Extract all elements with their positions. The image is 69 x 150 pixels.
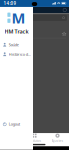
button[interactable]: Produtos	[23, 133, 46, 143]
staticText: Histórico de Produtos	[9, 52, 30, 57]
button[interactable]: Ajustes	[46, 133, 69, 143]
staticText: Ajustes	[51, 138, 63, 143]
staticText: Saúde	[9, 42, 19, 47]
staticText: Produtos	[27, 138, 41, 143]
button[interactable]: Histórico de Produtos	[0, 49, 33, 59]
staticText: Logout	[9, 121, 20, 127]
staticText: HM Track	[4, 28, 28, 35]
button[interactable]: Logout	[0, 119, 33, 129]
button[interactable]: Saúde	[0, 40, 33, 49]
staticText: Produto 1	[3, 31, 19, 36]
staticText: 14:09	[3, 0, 16, 6]
staticText: M	[12, 8, 26, 28]
